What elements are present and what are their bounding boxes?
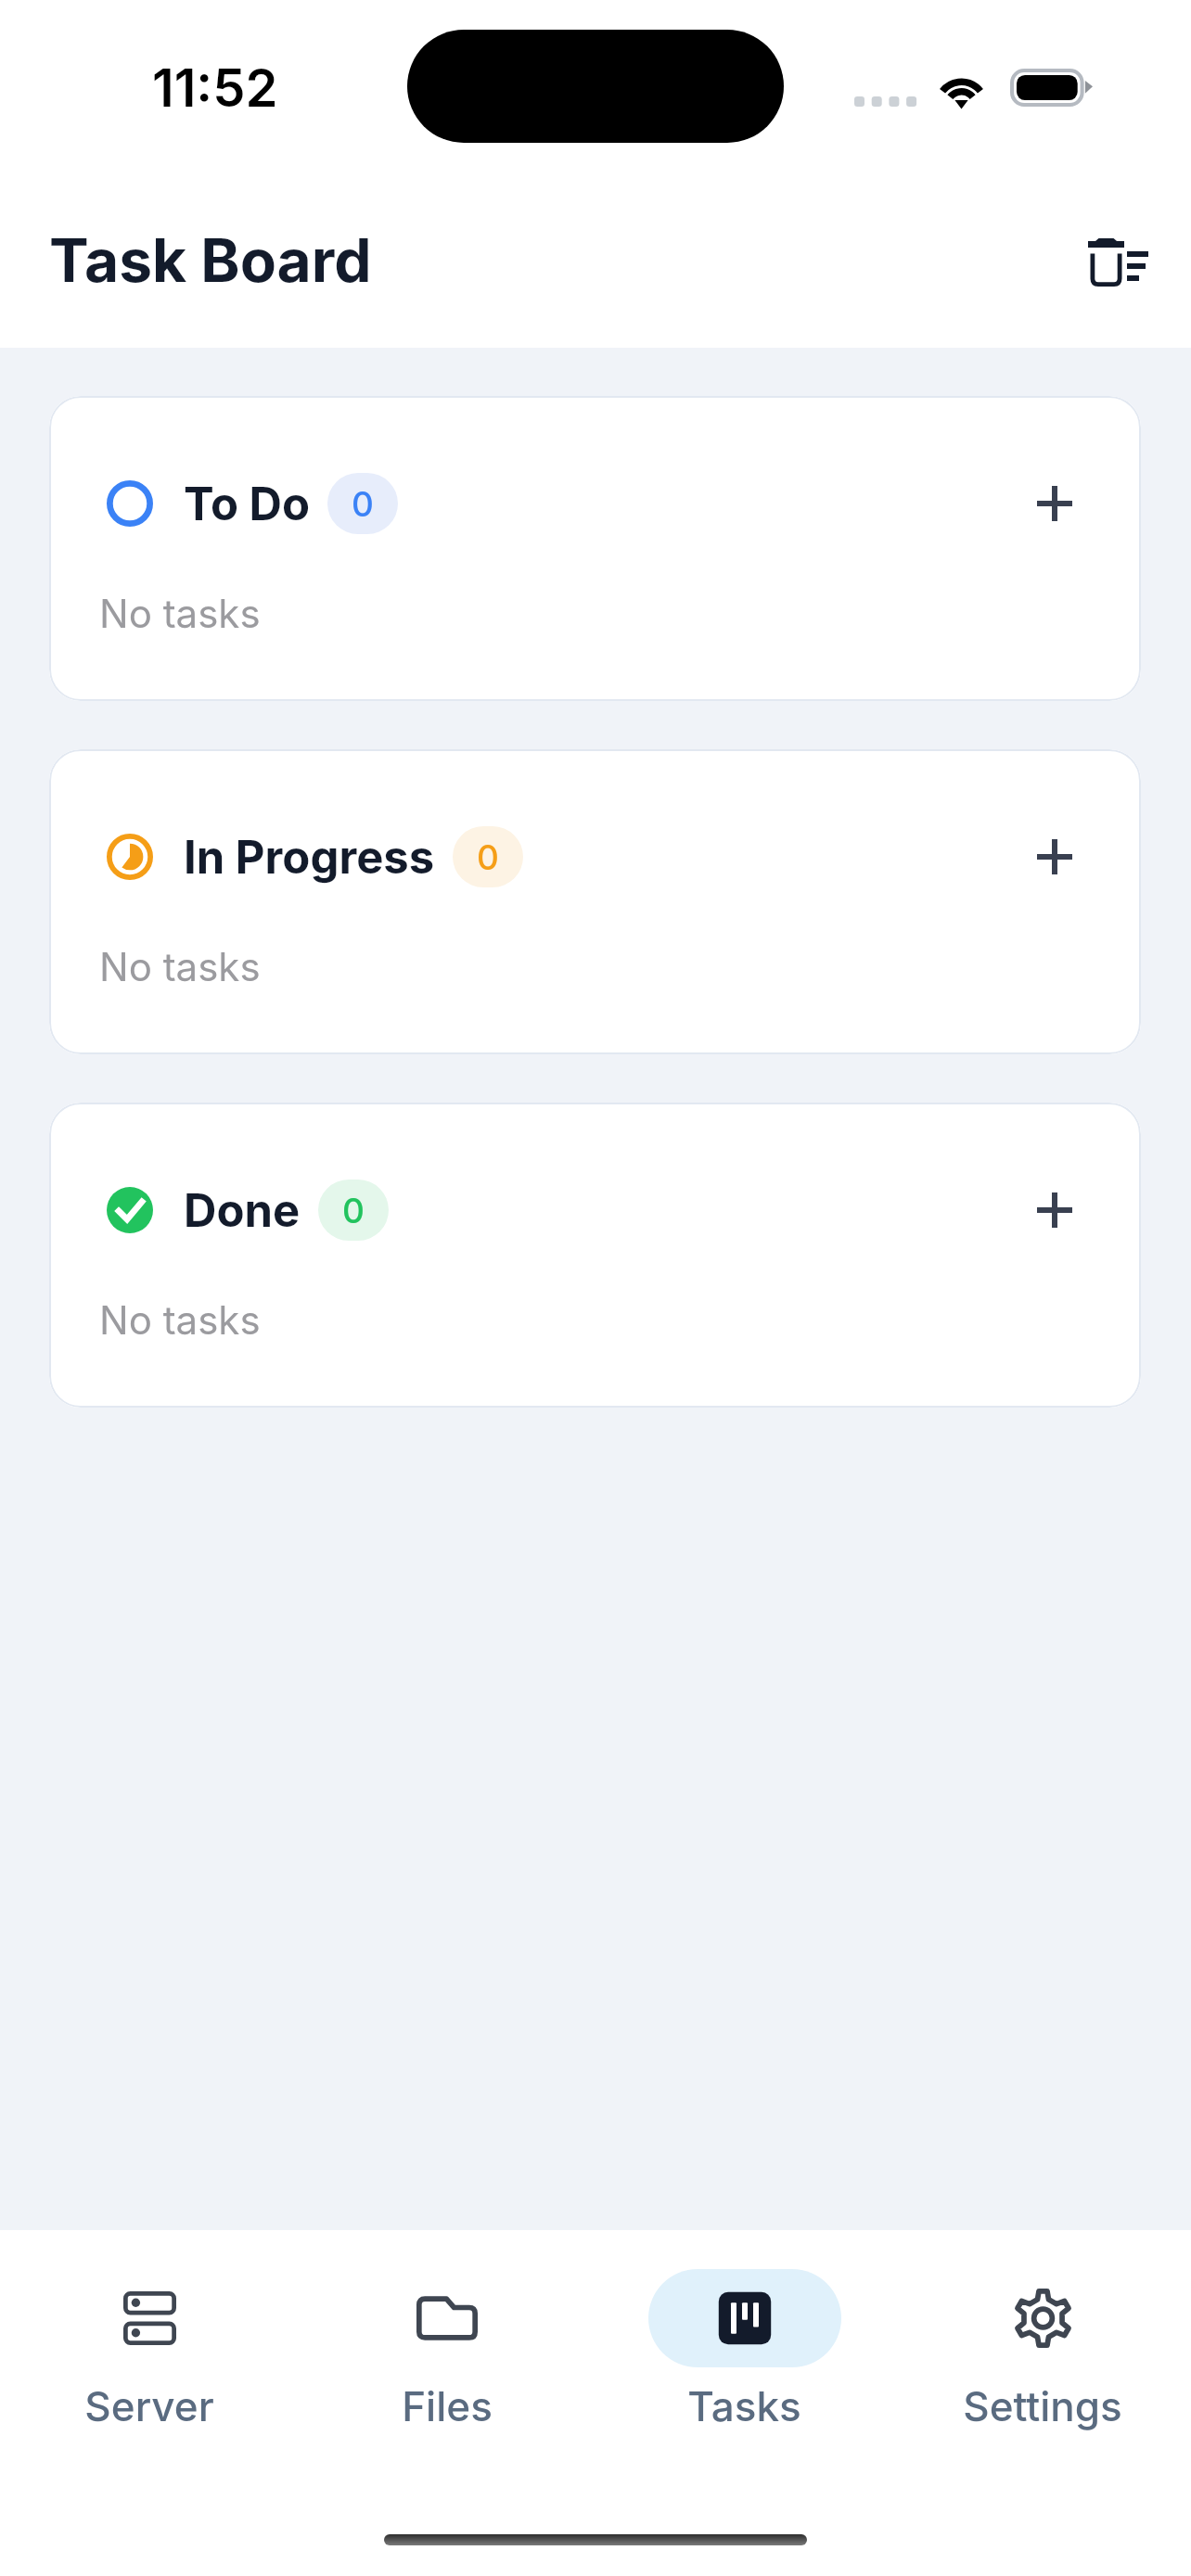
staticText: In Progress	[184, 830, 435, 885]
staticText: No tasks	[99, 943, 261, 990]
staticText: Task Board	[49, 224, 372, 296]
staticText: 0	[352, 483, 374, 525]
staticText: To Do	[184, 477, 310, 531]
staticText: Settings	[963, 2381, 1122, 2430]
staticText: 0	[342, 1190, 365, 1231]
staticText: Files	[402, 2381, 493, 2430]
staticText: No tasks	[99, 1296, 261, 1344]
button[interactable]: Add task to In Progress	[1019, 824, 1090, 889]
staticText: 11:52	[152, 57, 278, 120]
staticText: Done	[184, 1183, 301, 1238]
button[interactable]: Add task to To Do	[1019, 471, 1090, 536]
staticText: No tasks	[99, 590, 261, 637]
staticText: 0	[477, 836, 499, 878]
staticText: Server	[84, 2381, 214, 2430]
button[interactable]: Tasks	[595, 2230, 893, 2434]
staticText: Tasks	[687, 2381, 801, 2430]
button[interactable]: Settings	[893, 2230, 1191, 2434]
button[interactable]: Add task to Done	[1019, 1178, 1090, 1243]
button[interactable]: Clear completed tasks	[1073, 218, 1162, 307]
button[interactable]: Files	[298, 2230, 595, 2434]
button[interactable]: Server	[0, 2230, 298, 2434]
